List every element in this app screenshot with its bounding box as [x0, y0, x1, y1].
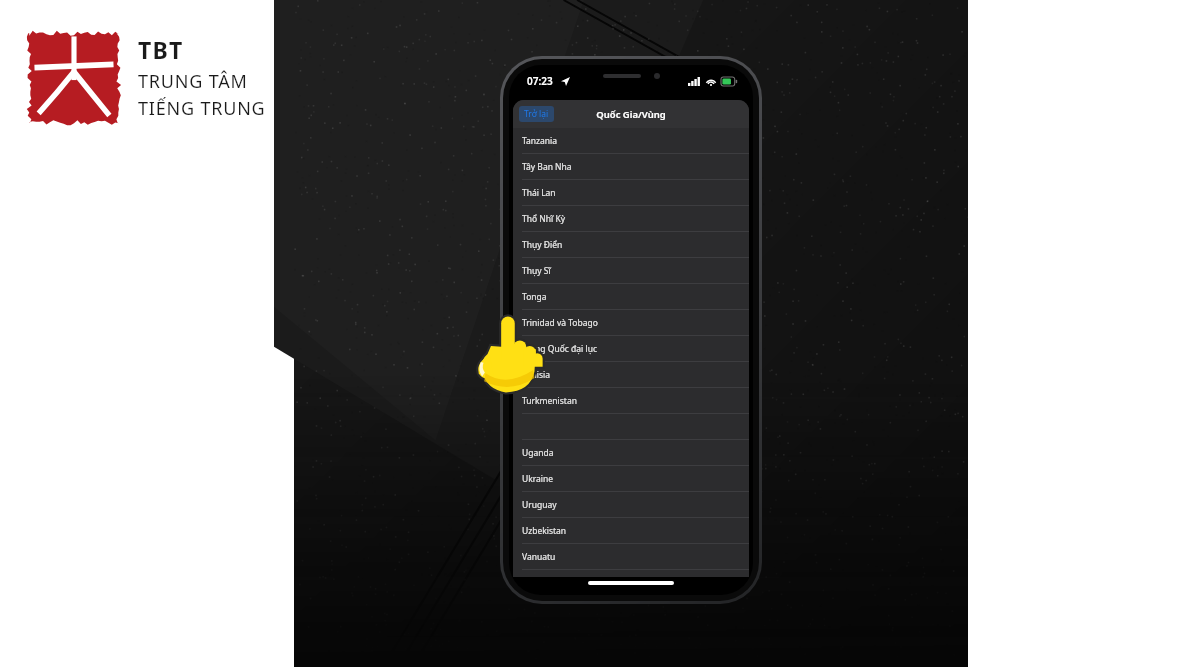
staticText: Trung Quốc đại lục	[522, 343, 598, 355]
staticText: Ukraine	[522, 473, 554, 485]
button[interactable]: Turkmenistan	[513, 388, 749, 414]
staticText: 07:23	[527, 74, 553, 88]
staticText: TBT	[138, 34, 184, 65]
staticText: Trở lại	[524, 108, 549, 120]
staticText: Uruguay	[522, 499, 557, 511]
staticText: TRUNG TÂM	[138, 69, 248, 94]
staticText: Thụy Sĩ	[522, 265, 551, 277]
button[interactable]: Tanzania	[513, 128, 749, 154]
staticText: Uganda	[522, 447, 554, 459]
button[interactable]: Trinidad và Tobago	[513, 310, 749, 336]
other: Tap pointer	[476, 314, 544, 394]
button[interactable]: Tây Ban Nha	[513, 154, 749, 180]
button[interactable]: Vanuatu	[513, 544, 749, 570]
button[interactable]: Tonga	[513, 284, 749, 310]
button[interactable]: TBT Trung Tam Tieng Trung logo	[14, 22, 284, 132]
button[interactable]: Thụy Sĩ	[513, 258, 749, 284]
staticText: Trinidad và Tobago	[522, 317, 598, 329]
button[interactable]: Thụy Điển	[513, 232, 749, 258]
button[interactable]: Uganda	[513, 440, 749, 466]
button[interactable]: Tunisia	[513, 362, 749, 388]
staticText: TIẾNG TRUNG	[138, 96, 266, 121]
staticText: Tanzania	[522, 135, 558, 147]
button[interactable]: Trung Quốc đại lục	[513, 336, 749, 362]
staticText: Quốc Gia/Vùng	[596, 108, 666, 121]
staticText: Uzbekistan	[522, 525, 567, 537]
staticText: Thổ Nhĩ Kỳ	[522, 213, 566, 225]
staticText: Vanuatu	[522, 551, 556, 563]
staticText: Thụy Điển	[522, 239, 563, 251]
staticText: Tunisia	[522, 369, 551, 381]
staticText: Tây Ban Nha	[522, 161, 572, 173]
button[interactable]	[513, 414, 749, 440]
button[interactable]: Uruguay	[513, 492, 749, 518]
button[interactable]: Uzbekistan	[513, 518, 749, 544]
button[interactable]: Trở lại	[519, 106, 554, 122]
button[interactable]: Thái Lan	[513, 180, 749, 206]
button[interactable]: Ukraine	[513, 466, 749, 492]
staticText: Turkmenistan	[522, 395, 577, 407]
staticText: Tonga	[522, 291, 547, 303]
staticText: Thái Lan	[522, 187, 556, 199]
button[interactable]: Thổ Nhĩ Kỳ	[513, 206, 749, 232]
